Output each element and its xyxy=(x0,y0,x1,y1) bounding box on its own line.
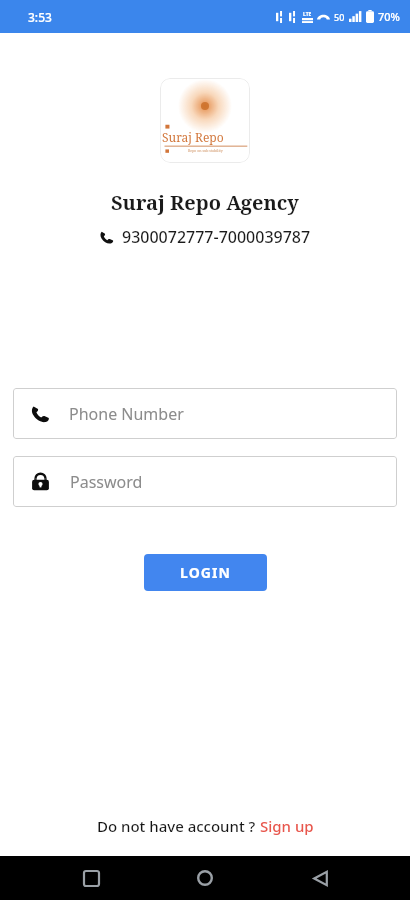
staticText: 70% xyxy=(378,9,400,24)
staticText: LTE xyxy=(303,11,312,18)
staticText: Password xyxy=(70,471,143,493)
button[interactable]: Password xyxy=(13,456,397,507)
staticText: 3:53 xyxy=(28,9,52,25)
staticText: Repo on sub stability xyxy=(188,148,223,153)
staticText: Suraj Repo Agen xyxy=(162,129,250,145)
staticText: Suraj Repo Agency xyxy=(111,189,299,216)
staticText: Sign up xyxy=(260,816,314,836)
staticText: 9300072777-7000039787 xyxy=(122,226,311,248)
staticText: LOGIN xyxy=(180,563,232,582)
other: Password xyxy=(30,471,51,492)
other: Phone xyxy=(30,404,50,424)
button[interactable]: LOGIN xyxy=(144,554,267,591)
button[interactable]: Home xyxy=(181,856,229,900)
other: Phone xyxy=(99,230,114,245)
staticText: Do not have account ? xyxy=(97,816,260,836)
staticText: Phone Number xyxy=(69,403,184,425)
button[interactable]: Recent apps xyxy=(67,856,115,900)
button[interactable]: Phone xyxy=(13,388,397,439)
button[interactable]: Do not have account ? xyxy=(87,812,324,840)
staticText: 50 xyxy=(334,11,345,23)
button[interactable]: Back xyxy=(296,856,344,900)
